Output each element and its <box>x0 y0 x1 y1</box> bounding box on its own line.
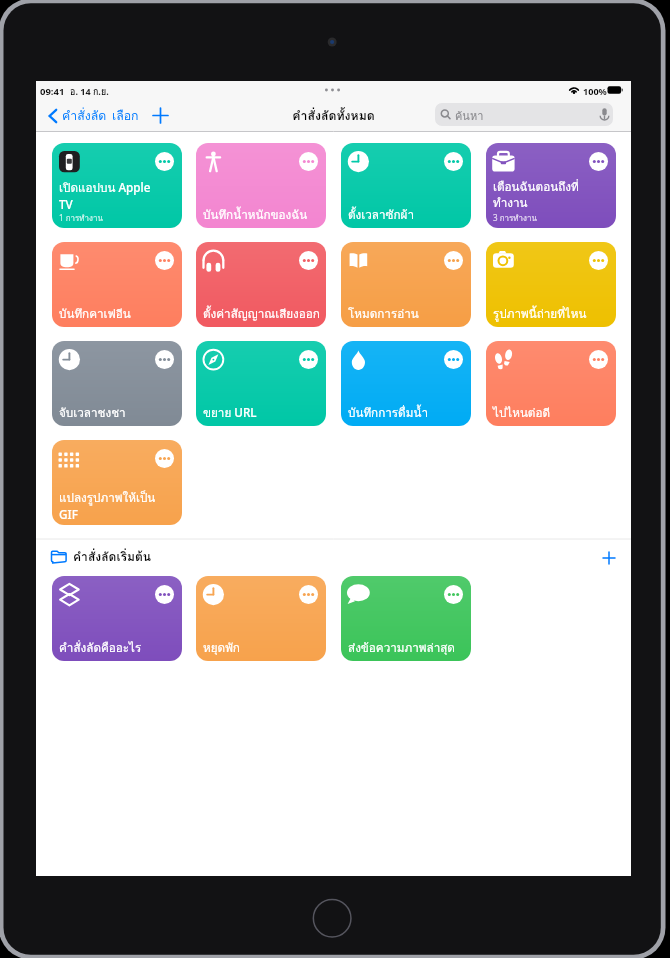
button[interactable]: More options <box>155 350 174 369</box>
staticText: เตือนฉันตอนถึงที่ ทำงาน <box>493 178 579 212</box>
button[interactable]: More options <box>589 350 608 369</box>
button[interactable]: More options <box>444 251 463 270</box>
staticText: หยุดพัก <box>203 639 240 658</box>
staticText: อ. 14 ก.ย. <box>70 85 109 99</box>
staticText: 09:41 <box>40 85 65 98</box>
staticText: ตั้งเวลาซักผ้า <box>348 206 414 225</box>
button[interactable]: เตือนฉันตอนถึงที่ ทำงาน <box>486 143 616 228</box>
staticText: รูปภาพนี้ถ่ายที่ไหน <box>493 305 587 324</box>
staticText: ไปไหนต่อดี <box>493 404 551 423</box>
staticText: บันทึกน้ำหนักของฉัน <box>203 206 308 225</box>
button[interactable]: จับเวลาชงชา <box>52 341 182 426</box>
staticText: บันทึกคาเฟอีน <box>59 305 131 324</box>
button[interactable]: บันทึกการดื่มน้ำ <box>341 341 471 426</box>
staticText: จับเวลาชงชา <box>59 404 126 423</box>
staticText: ตั้งค่าสัญญาณเสียงออก <box>203 305 320 324</box>
staticText: โหมดการอ่าน <box>348 305 419 324</box>
button[interactable]: ขยาย URL <box>196 341 326 426</box>
staticText: ส่งข้อความภาพล่าสุด <box>348 639 455 658</box>
button[interactable]: More options <box>155 585 174 604</box>
button[interactable]: More options <box>299 251 318 270</box>
button[interactable]: ตั้งค่าสัญญาณเสียงออก <box>196 242 326 327</box>
button[interactable]: Search <box>435 103 613 126</box>
button[interactable] <box>36 540 236 576</box>
staticText: คำสั่งลัดคืออะไร <box>59 639 142 658</box>
button[interactable]: Add shortcut <box>147 103 173 128</box>
button[interactable]: หยุดพัก <box>196 576 326 661</box>
button[interactable]: โหมดการอ่าน <box>341 242 471 327</box>
button[interactable]: บันทึกคาเฟอีน <box>52 242 182 327</box>
button[interactable]: More options <box>155 449 174 468</box>
staticText: แปลงรูปภาพให้เป็น GIF <box>59 489 156 522</box>
button[interactable]: บันทึกน้ำหนักของฉัน <box>196 143 326 228</box>
staticText: เปิดแอปบน Apple TV <box>59 179 151 212</box>
button[interactable]: More options <box>589 251 608 270</box>
button[interactable]: คำสั่งลัด <box>47 99 107 132</box>
button[interactable]: More options <box>589 152 608 171</box>
button[interactable]: ส่งข้อความภาพล่าสุด <box>341 576 471 661</box>
staticText: คำสั่งลัดทั้งหมด <box>292 106 375 126</box>
button[interactable]: Add shortcut to folder <box>597 546 621 570</box>
button[interactable]: เปิดแอปบน Apple TV <box>52 143 182 228</box>
staticText: บันทึกการดื่มน้ำ <box>348 404 428 423</box>
button[interactable]: รูปภาพนี้ถ่ายที่ไหน <box>486 242 616 327</box>
staticText: เลือก <box>112 106 139 126</box>
button[interactable]: คำสั่งลัดคืออะไร <box>52 576 182 661</box>
staticText: 1 การทำงาน <box>59 212 103 225</box>
button[interactable]: More options <box>155 152 174 171</box>
button[interactable]: More options <box>299 152 318 171</box>
button[interactable]: More options <box>155 251 174 270</box>
staticText: 100% <box>583 85 607 97</box>
button[interactable]: ไปไหนต่อดี <box>486 341 616 426</box>
staticText: คำสั่งลัดเริ่มต้น <box>73 547 152 566</box>
button[interactable]: แปลงรูปภาพให้เป็น GIF <box>52 440 182 525</box>
button[interactable]: More options <box>444 585 463 604</box>
staticText: ขยาย URL <box>203 404 257 423</box>
staticText: 3 การทำงาน <box>493 212 537 225</box>
button[interactable]: เลือก <box>112 99 139 132</box>
button[interactable]: More options <box>444 350 463 369</box>
staticText: คำสั่งลัด <box>62 106 107 126</box>
button[interactable]: More options <box>444 152 463 171</box>
button[interactable]: More options <box>299 585 318 604</box>
button[interactable]: More options <box>299 350 318 369</box>
staticText: ค้นหา <box>455 107 484 124</box>
button[interactable]: ตั้งเวลาซักผ้า <box>341 143 471 228</box>
